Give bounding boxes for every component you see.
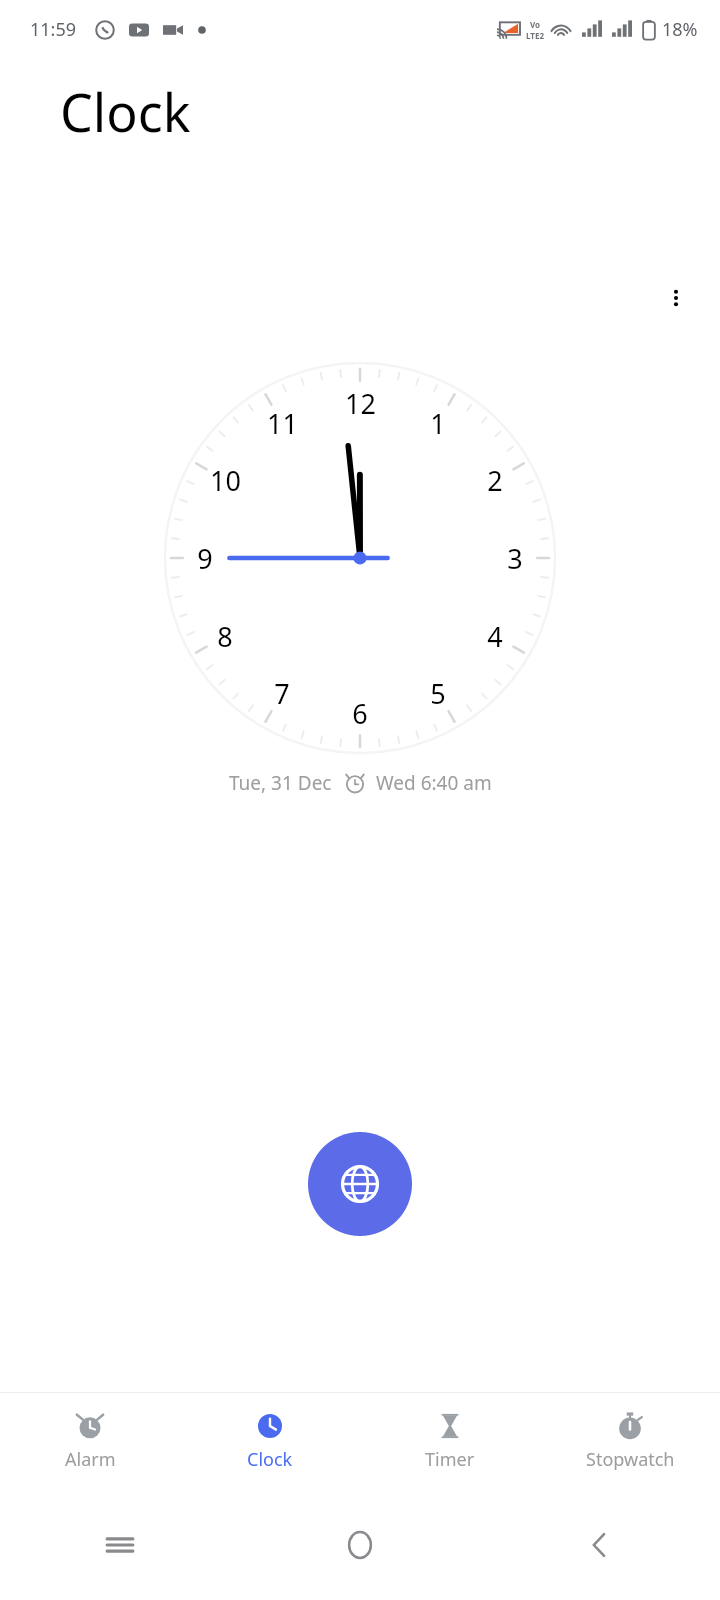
staticText: 10: [210, 462, 241, 499]
button[interactable]: More options: [652, 274, 700, 322]
staticText: 7: [274, 675, 290, 712]
staticText: 3: [507, 540, 523, 577]
button[interactable]: Stopwatch: [540, 1393, 720, 1490]
staticText: 11: [267, 405, 298, 442]
button[interactable]: Add city: [308, 1132, 412, 1236]
staticText: Wed 6:40 am: [376, 770, 492, 796]
staticText: Vo: [530, 19, 541, 30]
staticText: 9: [197, 540, 213, 577]
staticText: 1: [430, 405, 446, 442]
staticText: 12: [345, 385, 376, 422]
button[interactable]: Home: [240, 1490, 480, 1600]
staticText: Clock: [60, 76, 191, 147]
staticText: LTE2: [526, 30, 544, 41]
button[interactable]: Alarm: [0, 1393, 180, 1490]
button[interactable]: Recents: [0, 1490, 240, 1600]
staticText: Alarm: [65, 1447, 116, 1472]
button[interactable]: Back: [480, 1490, 720, 1600]
staticText: 6: [352, 695, 368, 732]
staticText: Timer: [425, 1447, 475, 1472]
staticText: 8: [217, 618, 233, 655]
button[interactable]: Timer: [360, 1393, 540, 1490]
staticText: 18%: [662, 17, 698, 42]
staticText: Tue, 31 Dec: [229, 770, 332, 796]
staticText: 11:59: [30, 17, 77, 42]
staticText: 2: [487, 462, 503, 499]
staticText: 5: [430, 675, 446, 712]
staticText: Clock: [247, 1447, 293, 1472]
staticText: 4: [487, 618, 503, 655]
button[interactable]: Clock: [180, 1393, 360, 1490]
staticText: Stopwatch: [586, 1447, 675, 1472]
